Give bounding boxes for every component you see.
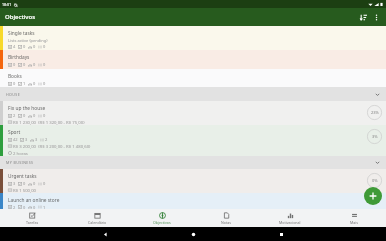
staticText: 0% [372, 178, 378, 183]
staticText: Tarefas [26, 220, 39, 225]
staticText: HOUSE [6, 92, 21, 97]
staticText: 0 [33, 181, 36, 186]
button[interactable]: Fix up the house [0, 101, 386, 125]
staticText: Urgent tasks [8, 173, 37, 180]
staticText: 2 [13, 205, 16, 209]
staticText: Single tasks [8, 30, 35, 37]
staticText: 23% [371, 110, 379, 115]
staticText: Lists active (pending) [8, 38, 48, 43]
button[interactable]: Notas [194, 209, 258, 227]
staticText: 0 [23, 62, 26, 67]
staticText: 3 [35, 137, 38, 142]
staticText: 42 [13, 137, 18, 142]
staticText: 18:01 [2, 2, 12, 7]
button[interactable]: Motivacional [258, 209, 322, 227]
staticText: Motivacional [279, 220, 301, 225]
staticText: 0 [13, 81, 16, 86]
button[interactable]: MY BUSINESS [0, 156, 386, 169]
staticText: 3 [25, 137, 28, 142]
staticText: 2 [13, 113, 16, 118]
staticText: 0 [43, 81, 46, 86]
button[interactable]: Urgent tasks [0, 169, 386, 193]
staticText: 0 [23, 44, 26, 49]
staticText: Mais [350, 220, 358, 225]
staticText: 0 [33, 113, 36, 118]
button[interactable]: Single tasks [0, 26, 386, 50]
staticText: Fix up the house [8, 105, 46, 112]
staticText: 4 [13, 44, 16, 49]
button[interactable]: Mais [322, 209, 386, 227]
button[interactable]: Tarefas [0, 209, 65, 227]
staticText: 0 [33, 81, 36, 86]
staticText: 0 [43, 44, 46, 49]
staticText: 1 [23, 81, 26, 86]
button[interactable]: Objectivos [130, 209, 194, 227]
staticText: Objectivos [5, 13, 36, 21]
staticText: 0 [13, 62, 16, 67]
button[interactable]: Sort [356, 10, 370, 24]
staticText: 1 [43, 205, 46, 209]
staticText: 0 [43, 113, 46, 118]
staticText: 3% [372, 134, 378, 139]
staticText: Calendário [88, 220, 107, 225]
staticText: 0 [23, 205, 26, 209]
button[interactable]: Birthdays [0, 50, 386, 69]
staticText: MY BUSINESS [6, 160, 34, 165]
staticText: 0 [33, 44, 36, 49]
staticText: Books [8, 73, 22, 80]
button[interactable]: HOUSE [0, 87, 386, 101]
button[interactable]: Launch an online store [0, 193, 386, 209]
staticText: R$ 1 230,00 (R$ 1 320,00 - R$ 75,00) [13, 119, 85, 125]
staticText: 0 [33, 205, 36, 209]
staticText: R$ 1 500,00 [13, 187, 37, 193]
staticText: 0 [43, 62, 46, 67]
staticText: R$ 3 200,00 (R$ 3 200,00 - R$ 1 480,60) [13, 143, 91, 149]
staticText: 0 [43, 181, 46, 186]
staticText: 3 [13, 181, 16, 186]
staticText: Launch an online store [8, 197, 60, 204]
button[interactable]: Books [0, 69, 386, 87]
staticText: Objectivos [153, 220, 171, 225]
staticText: 0 [33, 62, 36, 67]
staticText: Birthdays [8, 54, 30, 61]
button[interactable]: Calendário [65, 209, 130, 227]
button[interactable]: Add goal [364, 187, 382, 205]
staticText: Sport [8, 129, 21, 136]
staticText: 2 [45, 137, 48, 142]
button[interactable]: More options [370, 11, 383, 24]
staticText: 2 horas [13, 150, 28, 156]
staticText: 0 [23, 181, 26, 186]
staticText: 0 [23, 113, 26, 118]
button[interactable]: Sport [0, 125, 386, 156]
staticText: Notas [221, 220, 231, 225]
